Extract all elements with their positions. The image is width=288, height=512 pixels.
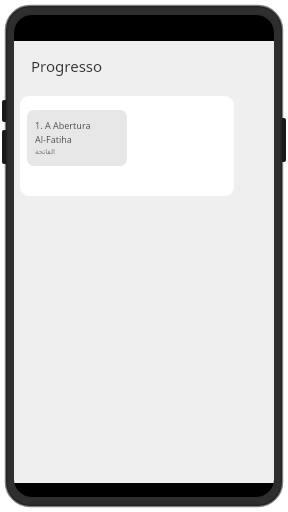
staticText: Progresso [31,56,103,76]
button[interactable]: 1. A Abertura [20,96,234,196]
staticText: 1. A Abertura [35,119,91,131]
staticText: Al-Fatiha [35,133,72,145]
staticText: الفاتحة [35,148,55,156]
button[interactable]: 1. A Abertura [27,110,127,166]
